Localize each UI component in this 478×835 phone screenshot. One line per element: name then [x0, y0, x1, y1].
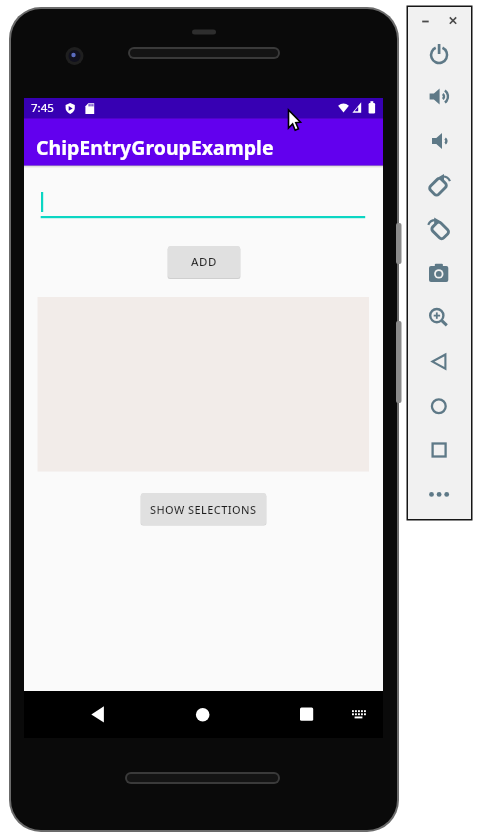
- button[interactable]: [168, 692, 238, 736]
- button[interactable]: [425, 41, 454, 70]
- button[interactable]: ADD: [168, 246, 240, 278]
- button[interactable]: [418, 14, 434, 30]
- button[interactable]: [425, 348, 454, 377]
- button[interactable]: [271, 692, 341, 736]
- button[interactable]: [425, 83, 454, 112]
- button[interactable]: [425, 480, 454, 509]
- button[interactable]: SHOW SELECTIONS: [141, 493, 266, 525]
- staticText: ChipEntryGroupExample: [36, 134, 274, 161]
- button[interactable]: [425, 392, 454, 421]
- button[interactable]: [446, 14, 462, 30]
- button[interactable]: [345, 692, 373, 736]
- button[interactable]: [425, 127, 454, 156]
- staticText: 7:45: [31, 100, 54, 116]
- button[interactable]: [425, 215, 454, 244]
- button[interactable]: [425, 259, 454, 288]
- button[interactable]: [425, 172, 454, 201]
- button[interactable]: [62, 692, 132, 736]
- staticText: SHOW SELECTIONS: [150, 502, 257, 517]
- staticText: ADD: [191, 254, 217, 270]
- button[interactable]: [425, 302, 454, 331]
- button[interactable]: [40, 186, 365, 218]
- button[interactable]: [425, 436, 454, 465]
